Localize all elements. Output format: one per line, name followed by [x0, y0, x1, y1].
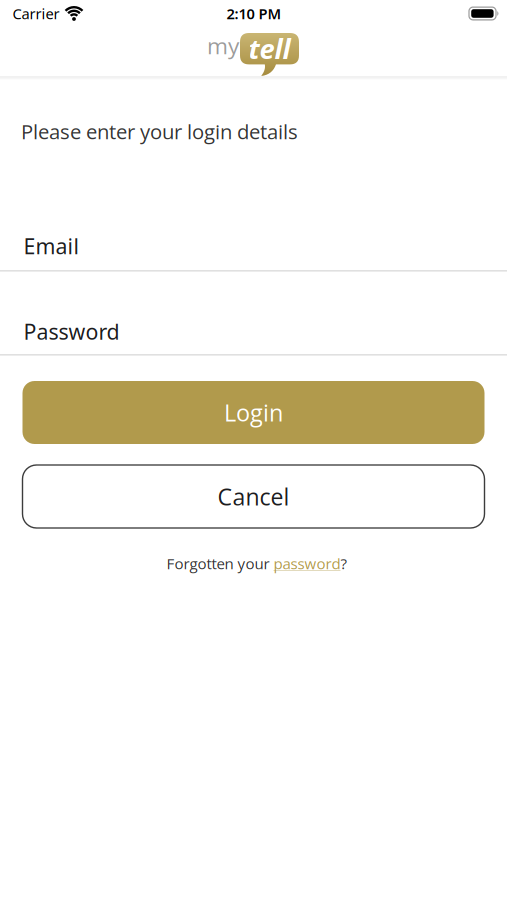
button[interactable]: Password — [23, 311, 483, 351]
staticText: Login — [224, 396, 283, 428]
button[interactable]: Cancel — [22, 465, 484, 528]
button[interactable]: Forgotten your — [166, 553, 347, 574]
button[interactable]: Email — [23, 226, 483, 266]
staticText: password — [273, 553, 340, 574]
button[interactable]: Login — [22, 381, 484, 444]
staticText: Forgotten your — [166, 553, 273, 574]
staticText: Please enter your login details — [21, 118, 298, 145]
staticText: my — [207, 30, 239, 61]
staticText: Email — [23, 232, 79, 260]
staticText: Cancel — [217, 481, 289, 512]
staticText: ? — [340, 553, 347, 574]
staticText: Password — [23, 317, 119, 346]
staticText: 2:10 PM — [226, 4, 281, 23]
staticText: Carrier — [12, 4, 59, 23]
staticText: tell — [248, 30, 290, 67]
